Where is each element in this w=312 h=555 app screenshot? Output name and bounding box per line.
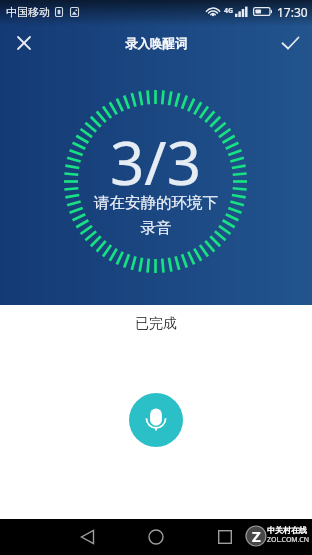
staticText: 3/3 (110, 121, 201, 203)
button[interactable]: Record (129, 393, 183, 447)
staticText: 17:30 (277, 4, 308, 20)
button[interactable]: Back (74, 524, 100, 550)
button[interactable]: Close (10, 29, 38, 57)
staticText: Z (252, 526, 261, 546)
staticText: 已完成 (135, 315, 177, 333)
button[interactable]: Confirm (276, 29, 304, 57)
staticText: ZOL.COM.CN (267, 535, 309, 545)
staticText: 中国移动 (6, 5, 50, 19)
staticText: 请在安静的环境下 录音 (94, 193, 218, 237)
staticText: 4G (224, 6, 234, 16)
staticText: 中关村在线 (267, 525, 307, 535)
staticText: 录入唤醒词 (125, 36, 188, 52)
button[interactable]: Home (143, 524, 169, 550)
button[interactable]: Recents (212, 524, 238, 550)
